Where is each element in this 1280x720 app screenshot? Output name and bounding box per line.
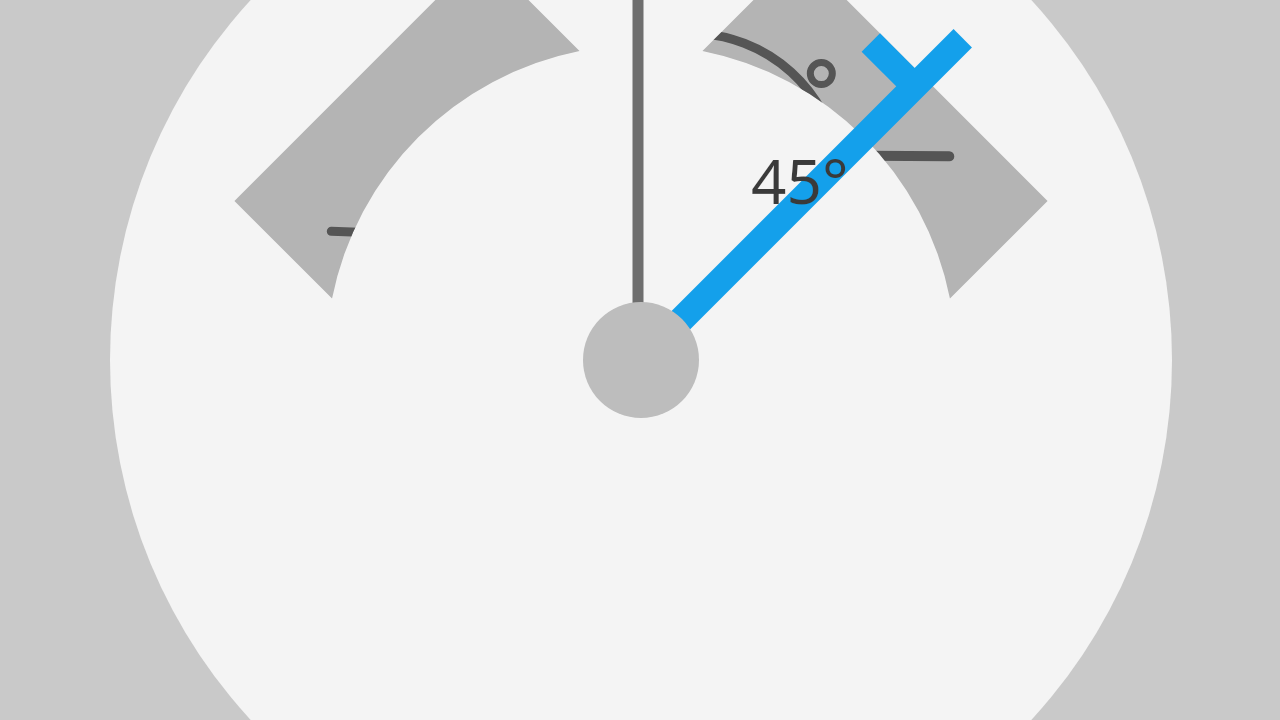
button[interactable]: Protractor angle measurement, 45 degrees — [0, 0, 1280, 720]
